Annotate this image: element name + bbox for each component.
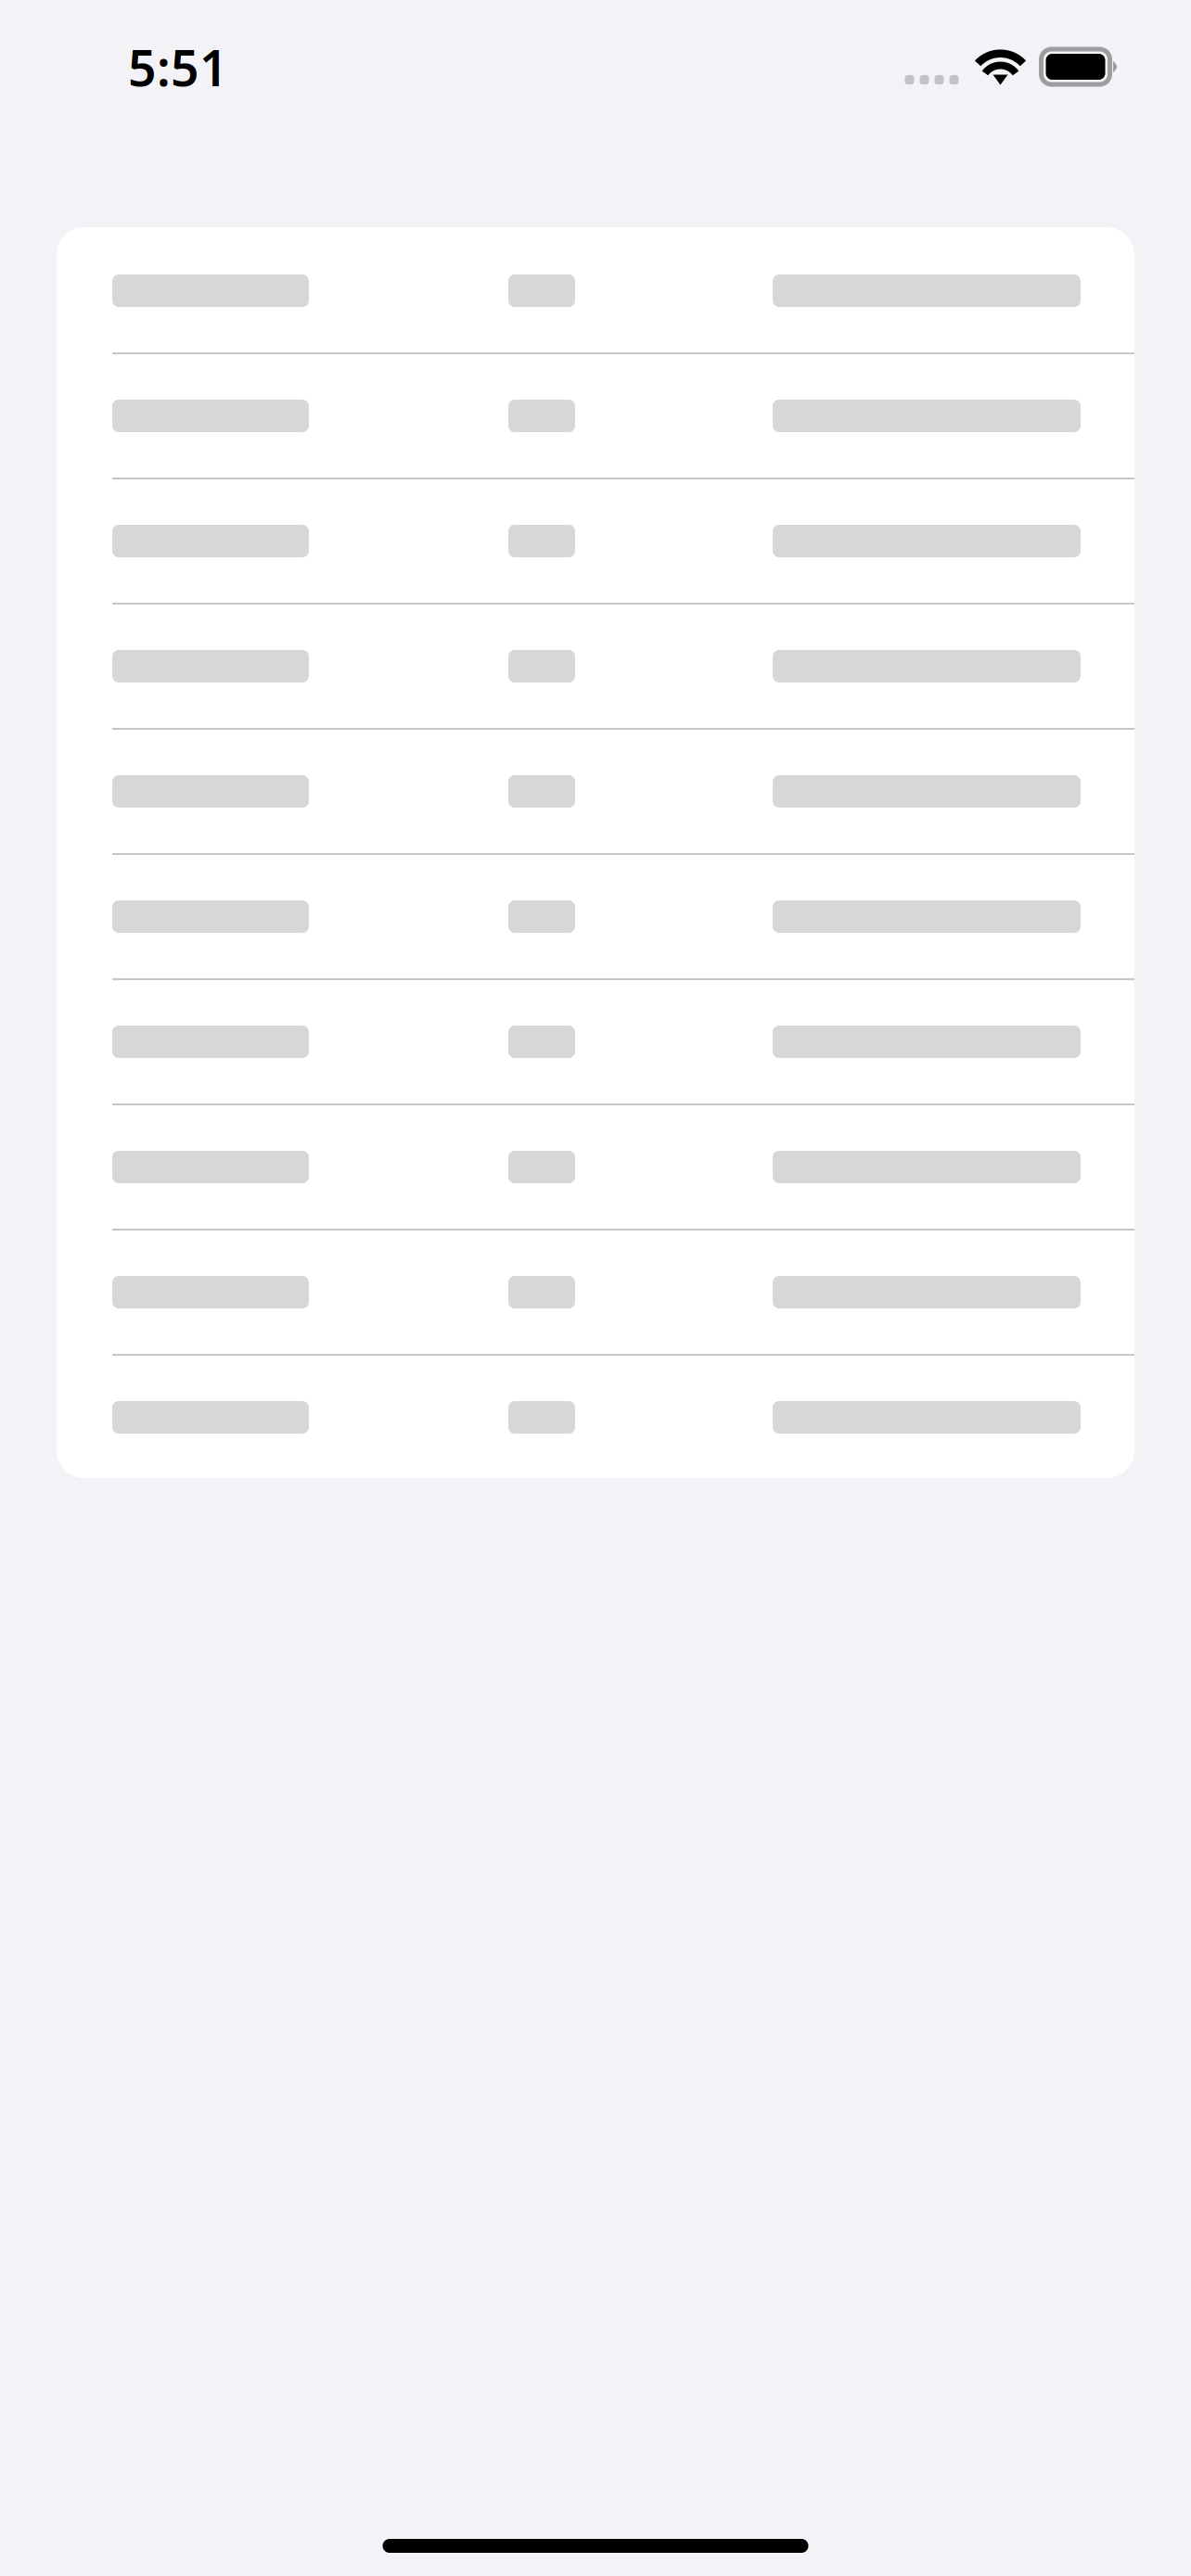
button[interactable]: Loading row 8	[57, 1103, 1134, 1229]
button[interactable]: Loading row 4	[57, 603, 1134, 728]
button[interactable]: Loading row 2	[57, 352, 1134, 478]
button[interactable]: Loading row 7	[57, 978, 1134, 1103]
button[interactable]: Loading row 9	[57, 1229, 1134, 1354]
button[interactable]: Loading row 10	[57, 1354, 1134, 1478]
staticText: 5:51	[128, 34, 228, 100]
button[interactable]: Loading row 5	[57, 728, 1134, 853]
button[interactable]: Loading row 6	[57, 853, 1134, 978]
button[interactable]: Loading row 3	[57, 478, 1134, 603]
button[interactable]: Loading row 1	[57, 227, 1134, 352]
